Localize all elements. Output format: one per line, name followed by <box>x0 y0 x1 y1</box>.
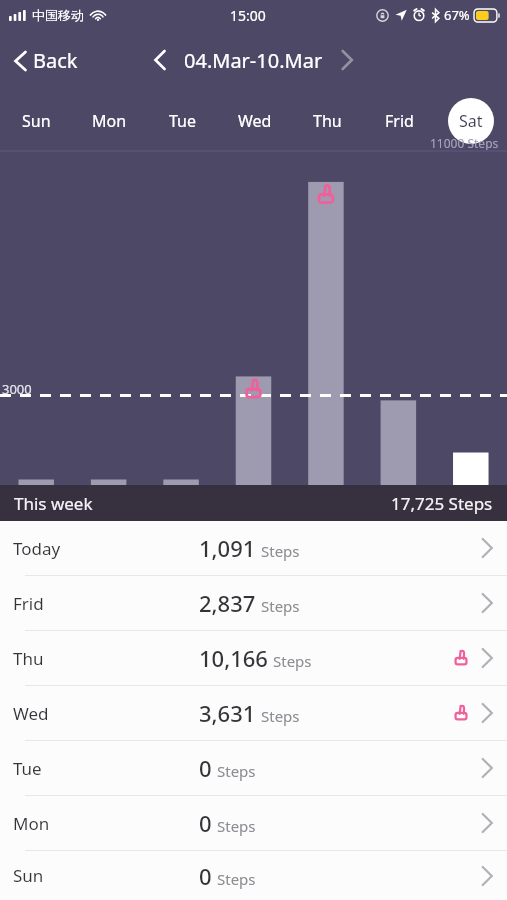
staticText: 17,725 Steps <box>391 492 493 515</box>
staticText: 2,837 <box>199 588 256 618</box>
button[interactable]: Tue <box>0 741 507 795</box>
staticText: Back <box>33 47 78 74</box>
staticText: Thu <box>313 110 342 132</box>
staticText: Wed <box>13 702 49 725</box>
button[interactable]: Mon <box>0 796 507 850</box>
staticText: 3000 <box>2 380 32 398</box>
button[interactable]: Tue <box>146 90 219 152</box>
button[interactable]: Thu <box>0 631 507 685</box>
staticText: 67% <box>444 6 470 24</box>
staticText: Sun <box>22 110 51 132</box>
button[interactable]: Previous week <box>144 41 176 79</box>
button[interactable]: Mon <box>73 90 146 152</box>
staticText: 04.Mar-10.Mar <box>184 47 323 74</box>
button[interactable]: Frid <box>363 90 435 152</box>
button[interactable]: Sun <box>0 90 73 152</box>
staticText: Mon <box>13 812 50 835</box>
staticText: Steps <box>261 706 300 726</box>
staticText: Tue <box>13 757 42 780</box>
button[interactable]: Sun <box>0 851 507 900</box>
staticText: Today <box>13 537 61 560</box>
staticText: Tue <box>169 110 197 132</box>
button[interactable]: Sat <box>435 90 507 152</box>
staticText: Steps <box>217 816 256 836</box>
button[interactable]: Frid <box>0 576 507 630</box>
staticText: Frid <box>13 592 44 615</box>
staticText: Sat <box>459 110 483 132</box>
button[interactable]: Back <box>0 39 90 82</box>
staticText: 1,091 <box>199 533 256 563</box>
staticText: 中国移动 <box>32 7 84 23</box>
staticText: Sun <box>13 864 44 887</box>
staticText: Thu <box>13 647 44 670</box>
button[interactable]: Wed <box>219 90 291 152</box>
staticText: 11000 Steps <box>430 135 499 151</box>
button[interactable]: Wed <box>0 686 507 740</box>
staticText: 10,166 <box>199 643 268 673</box>
staticText: Steps <box>217 761 256 781</box>
staticText: 0 <box>199 861 212 891</box>
staticText: Steps <box>261 596 300 616</box>
staticText: 0 <box>199 808 212 838</box>
staticText: Steps <box>273 651 312 671</box>
staticText: This week <box>14 492 93 515</box>
button[interactable]: This week <box>0 485 507 521</box>
staticText: Steps <box>261 541 300 561</box>
staticText: Mon <box>92 110 127 132</box>
staticText: Wed <box>238 110 272 132</box>
staticText: Frid <box>385 110 414 132</box>
staticText: 15:00 <box>230 6 266 25</box>
staticText: Steps <box>217 869 256 889</box>
button[interactable]: Next week <box>331 41 363 79</box>
button[interactable]: Thu <box>291 90 363 152</box>
staticText: 0 <box>199 753 212 783</box>
staticText: 3,631 <box>199 698 256 728</box>
button[interactable]: Today <box>0 521 507 575</box>
